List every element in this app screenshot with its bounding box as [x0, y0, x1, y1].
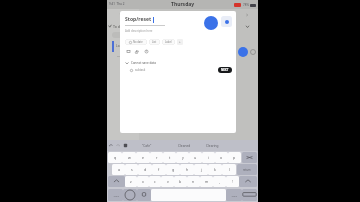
button[interactable]: y	[176, 152, 189, 163]
button[interactable]: h	[180, 164, 194, 175]
button[interactable]: j	[194, 164, 208, 175]
button[interactable]: !	[226, 176, 239, 187]
button[interactable]: g	[166, 164, 180, 175]
staticText: o	[220, 155, 223, 160]
staticText: List	[152, 40, 157, 44]
staticText: +	[179, 40, 181, 44]
button[interactable]: To do expl	[108, 23, 139, 29]
button[interactable]: Undo	[109, 144, 113, 148]
staticText: Clearing	[206, 144, 219, 148]
staticText: Add description here	[125, 29, 153, 33]
button[interactable]: z	[125, 176, 137, 187]
button[interactable]: x	[137, 176, 149, 187]
button[interactable]: More	[250, 49, 256, 55]
button[interactable]: k	[208, 164, 222, 175]
button[interactable]: m	[200, 176, 213, 187]
button[interactable]: Dictation	[137, 189, 151, 201]
button[interactable]: ,	[213, 176, 226, 187]
button[interactable]: f	[152, 164, 166, 175]
button[interactable]: Redo	[116, 144, 120, 148]
staticText: x	[142, 179, 144, 184]
staticText: l	[229, 167, 230, 172]
staticText: Cleaned	[178, 144, 191, 148]
button[interactable]: .?123	[108, 189, 123, 201]
staticText: h	[186, 167, 189, 172]
button[interactable]: Attach	[125, 48, 131, 54]
button[interactable]: Paste	[123, 143, 128, 148]
staticText: e	[142, 155, 144, 160]
staticText: r	[156, 155, 158, 160]
staticText: .?123	[231, 194, 237, 197]
staticText: Loading	[116, 44, 129, 48]
button[interactable]: .?123	[226, 189, 242, 201]
button[interactable]: o	[215, 152, 228, 163]
button[interactable]: t	[163, 152, 176, 163]
staticText: subtask	[135, 68, 146, 72]
button[interactable]: Loading	[112, 40, 129, 52]
button[interactable]: List	[149, 39, 160, 45]
button[interactable]: More options	[177, 39, 183, 45]
staticText: NEXT	[221, 68, 229, 72]
button[interactable]: Record	[134, 48, 140, 54]
other: Forward	[245, 13, 249, 17]
button[interactable]: Shift	[108, 176, 125, 187]
staticText: No date	[133, 40, 143, 44]
staticText: p	[233, 155, 236, 160]
button[interactable]: NEXT	[218, 67, 232, 73]
button[interactable]: b	[174, 176, 187, 187]
button[interactable]: p	[228, 152, 241, 163]
staticText: f	[158, 167, 160, 172]
staticText: w	[128, 155, 131, 160]
button[interactable]: Add	[238, 47, 248, 57]
staticText: g	[172, 167, 175, 172]
button[interactable]: r	[150, 152, 163, 163]
staticText: Thursday	[171, 1, 195, 8]
button[interactable]: q	[108, 152, 122, 163]
other: Collapse	[245, 24, 250, 29]
button[interactable]: subtask	[130, 68, 232, 72]
button[interactable]: w	[122, 152, 136, 163]
staticText: y	[182, 155, 184, 160]
button[interactable]: Stop/reset	[125, 16, 165, 26]
button[interactable]: e	[136, 152, 150, 163]
staticText: Cannot save data	[131, 61, 156, 65]
staticText: v	[167, 179, 169, 184]
button[interactable]: n	[187, 176, 200, 187]
button[interactable]: d	[138, 164, 152, 175]
button[interactable]: Options	[221, 16, 232, 27]
button[interactable]: Emoji	[123, 189, 137, 201]
button[interactable]: a	[112, 164, 125, 175]
button[interactable]: l	[222, 164, 236, 175]
button[interactable]: return	[237, 164, 257, 175]
staticText: t	[169, 155, 171, 160]
button[interactable]: Label	[162, 39, 175, 45]
staticText: ,	[219, 179, 220, 184]
button[interactable]: u	[189, 152, 202, 163]
button[interactable]: Save	[204, 16, 218, 30]
button[interactable]: c	[149, 176, 161, 187]
staticText: d	[144, 167, 147, 172]
button[interactable]: s	[125, 164, 138, 175]
staticText: Label	[165, 40, 172, 44]
staticText: u	[194, 155, 197, 160]
staticText: c	[154, 179, 156, 184]
button[interactable]: No date	[125, 39, 147, 45]
button[interactable]: Voice	[143, 48, 149, 54]
button[interactable]	[112, 32, 136, 38]
staticText: q	[114, 155, 117, 160]
staticText: .?123	[113, 194, 119, 197]
staticText: return	[243, 168, 251, 172]
button[interactable]: Shift right	[239, 176, 257, 187]
button[interactable]: v	[161, 176, 174, 187]
staticText: "Cafe"	[142, 144, 152, 148]
button[interactable]: i	[202, 152, 215, 163]
staticText: n	[192, 179, 195, 184]
button[interactable]: Hide keyboard	[242, 189, 257, 201]
staticText: !	[232, 179, 233, 184]
staticText: Stop/reset	[125, 16, 152, 23]
button[interactable]: Cannot save data	[125, 61, 232, 65]
staticText: k	[214, 167, 216, 172]
button[interactable]: Backspace	[242, 152, 257, 163]
staticText: m	[205, 179, 209, 184]
